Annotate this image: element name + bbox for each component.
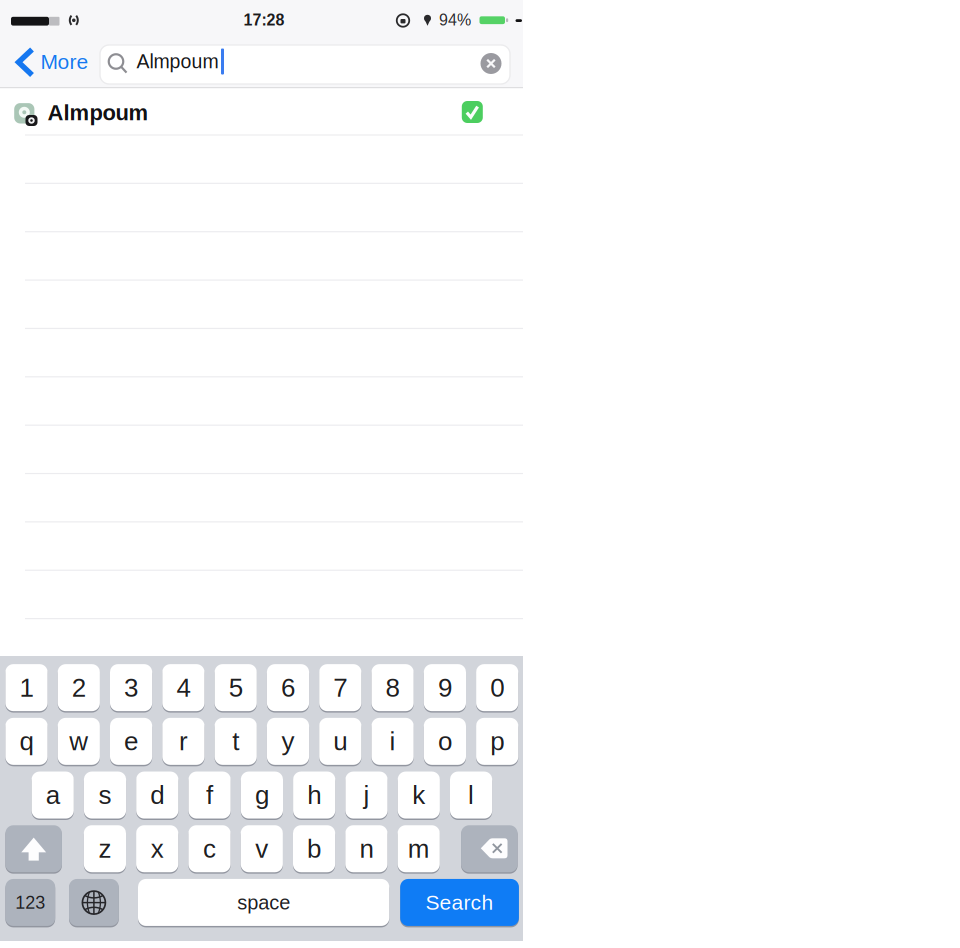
staticText: z (98, 834, 111, 863)
button[interactable]: k (398, 770, 440, 820)
staticText: i (390, 727, 396, 756)
button[interactable]: y (267, 717, 309, 766)
button[interactable]: u (319, 717, 361, 766)
button[interactable]: q (5, 717, 48, 766)
staticText: l (468, 780, 474, 809)
staticText: w (69, 727, 88, 756)
staticText: n (359, 834, 373, 863)
button[interactable]: Shift (5, 824, 62, 874)
staticText: r (179, 727, 188, 756)
button[interactable]: p (476, 717, 518, 766)
button[interactable]: f (188, 770, 231, 820)
staticText: 5 (229, 673, 243, 702)
staticText: 8 (386, 673, 400, 702)
staticText: 0 (490, 673, 504, 702)
button[interactable]: Almpoum (100, 45, 510, 84)
button[interactable]: v (241, 824, 283, 874)
staticText: y (281, 727, 294, 756)
button[interactable]: i (371, 717, 414, 766)
staticText: 4 (176, 673, 190, 702)
button[interactable]: c (188, 824, 231, 874)
button[interactable]: 6 (267, 663, 309, 713)
button[interactable]: d (136, 770, 178, 820)
staticText: 17:28 (243, 11, 284, 29)
button[interactable]: 2 (58, 663, 100, 713)
button[interactable]: 8 (371, 663, 414, 713)
button[interactable]: space (138, 878, 389, 927)
staticText: 6 (281, 673, 295, 702)
staticText: a (46, 780, 60, 809)
staticText: Almpoum (136, 51, 218, 72)
staticText: More (40, 50, 88, 73)
staticText: c (203, 834, 216, 863)
button[interactable]: n (345, 824, 387, 874)
button[interactable]: o (424, 717, 466, 766)
button[interactable]: g (241, 770, 283, 820)
button[interactable]: More (13, 46, 95, 77)
staticText: u (333, 727, 347, 756)
button[interactable]: t (215, 717, 257, 766)
button[interactable]: j (345, 770, 388, 820)
staticText: p (490, 727, 504, 756)
staticText: 2 (72, 673, 86, 702)
button[interactable]: z (84, 824, 126, 874)
button[interactable]: w (58, 717, 100, 766)
button[interactable]: l (450, 770, 492, 820)
staticText: v (255, 834, 268, 863)
button[interactable]: b (293, 824, 335, 874)
button[interactable]: Clear search text (480, 52, 502, 74)
button[interactable]: e (110, 717, 152, 766)
button[interactable]: Almpoum (0, 88, 523, 135)
staticText: x (151, 834, 164, 863)
button[interactable]: 7 (319, 663, 361, 713)
staticText: j (363, 780, 369, 809)
button[interactable]: 5 (215, 663, 257, 713)
button[interactable]: 0 (476, 663, 518, 713)
button[interactable]: 9 (424, 663, 466, 713)
button[interactable]: m (398, 824, 440, 874)
staticText: g (255, 780, 269, 809)
button[interactable]: h (293, 770, 335, 820)
staticText: q (19, 727, 33, 756)
button[interactable]: 4 (162, 663, 204, 713)
staticText: 7 (333, 673, 347, 702)
staticText: d (150, 780, 164, 809)
staticText: Search (426, 891, 494, 914)
button[interactable]: 1 (5, 663, 48, 713)
button[interactable]: a (32, 770, 74, 820)
button[interactable]: x (136, 824, 178, 874)
staticText: 1 (19, 673, 33, 702)
button[interactable]: r (162, 717, 204, 766)
staticText: t (232, 727, 239, 756)
staticText: 3 (124, 673, 138, 702)
staticText: Almpoum (47, 100, 148, 125)
staticText: e (124, 727, 138, 756)
button[interactable]: s (84, 770, 126, 820)
staticText: 9 (438, 673, 452, 702)
button[interactable]: Search (400, 878, 519, 927)
button[interactable]: Next keyboard (69, 878, 119, 927)
staticText: s (98, 780, 111, 809)
staticText: o (438, 727, 452, 756)
staticText: m (408, 834, 430, 863)
staticText: k (412, 780, 425, 809)
button[interactable]: Delete (461, 824, 518, 874)
staticText: 123 (15, 892, 45, 912)
button[interactable]: 3 (110, 663, 152, 713)
staticText: h (307, 780, 321, 809)
staticText: f (206, 780, 213, 809)
staticText: 94% (439, 11, 471, 29)
button[interactable]: Numbers (5, 878, 55, 927)
staticText: space (237, 891, 290, 914)
staticText: b (307, 834, 321, 863)
